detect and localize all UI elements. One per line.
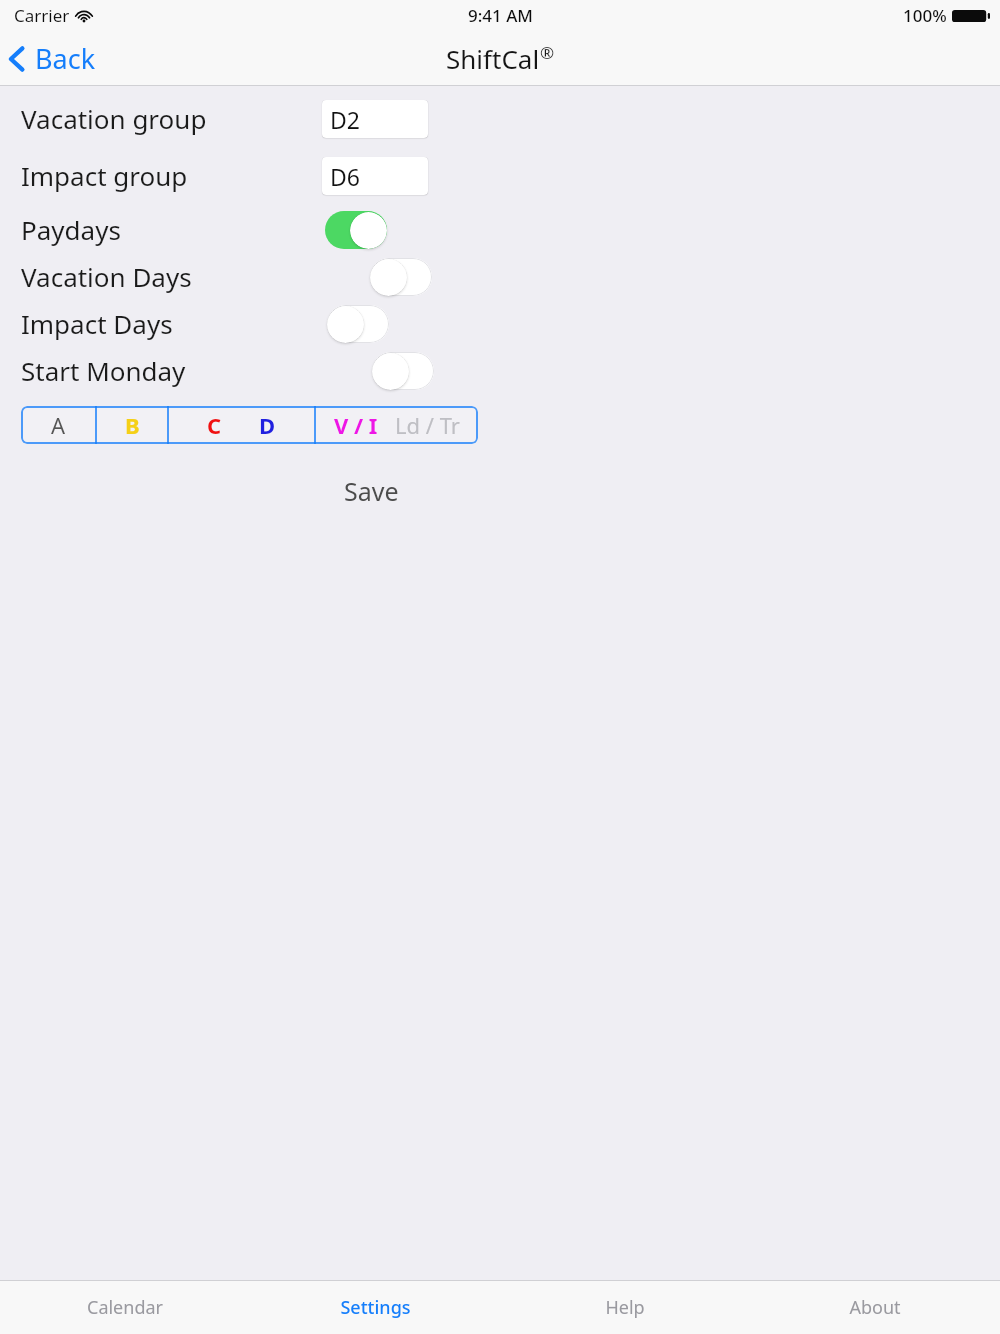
button[interactable]: Settings xyxy=(250,1281,500,1334)
staticText: D6 xyxy=(330,161,360,192)
staticText: Vacation Days xyxy=(21,259,192,294)
staticText: C xyxy=(207,410,222,440)
staticText: Vacation group xyxy=(21,101,207,136)
button[interactable]: Paydays xyxy=(325,211,387,249)
button[interactable]: B xyxy=(95,406,167,444)
staticText: Carrier xyxy=(14,4,70,27)
staticText: B xyxy=(125,410,140,440)
staticText: Start Monday xyxy=(21,353,186,388)
staticText: V / I xyxy=(334,410,378,440)
staticText: Settings xyxy=(340,1295,411,1320)
staticText: Save xyxy=(344,474,399,508)
button[interactable]: About xyxy=(750,1281,1000,1334)
button[interactable]: Vacation Days xyxy=(370,258,432,296)
button[interactable]: D2 xyxy=(322,100,428,138)
staticText: Back xyxy=(35,40,96,77)
button[interactable]: D6 xyxy=(322,157,428,195)
button[interactable]: V / I xyxy=(314,406,478,444)
staticText: Calendar xyxy=(87,1295,163,1320)
staticText: A xyxy=(51,410,66,440)
staticText: D xyxy=(259,410,276,440)
button[interactable]: A xyxy=(21,406,95,444)
staticText: 9:41 AM xyxy=(468,4,533,27)
staticText: ® xyxy=(540,41,555,64)
staticText: D2 xyxy=(330,104,360,135)
staticText: Help xyxy=(605,1295,645,1320)
button[interactable]: Start Monday xyxy=(372,352,434,390)
button[interactable]: Help xyxy=(500,1281,750,1334)
button[interactable]: Impact Days xyxy=(327,305,389,343)
staticText: Impact Days xyxy=(21,306,173,341)
button[interactable]: Calendar xyxy=(0,1281,250,1334)
button[interactable]: Save xyxy=(330,468,413,514)
button[interactable]: Back xyxy=(0,34,110,83)
staticText: 100% xyxy=(903,4,947,27)
staticText: About xyxy=(849,1295,901,1320)
staticText: ShiftCal xyxy=(446,41,540,76)
staticText: Ld / Tr xyxy=(395,410,460,440)
button[interactable]: C xyxy=(167,406,314,444)
staticText: Paydays xyxy=(21,212,121,247)
staticText: Impact group xyxy=(21,158,188,193)
